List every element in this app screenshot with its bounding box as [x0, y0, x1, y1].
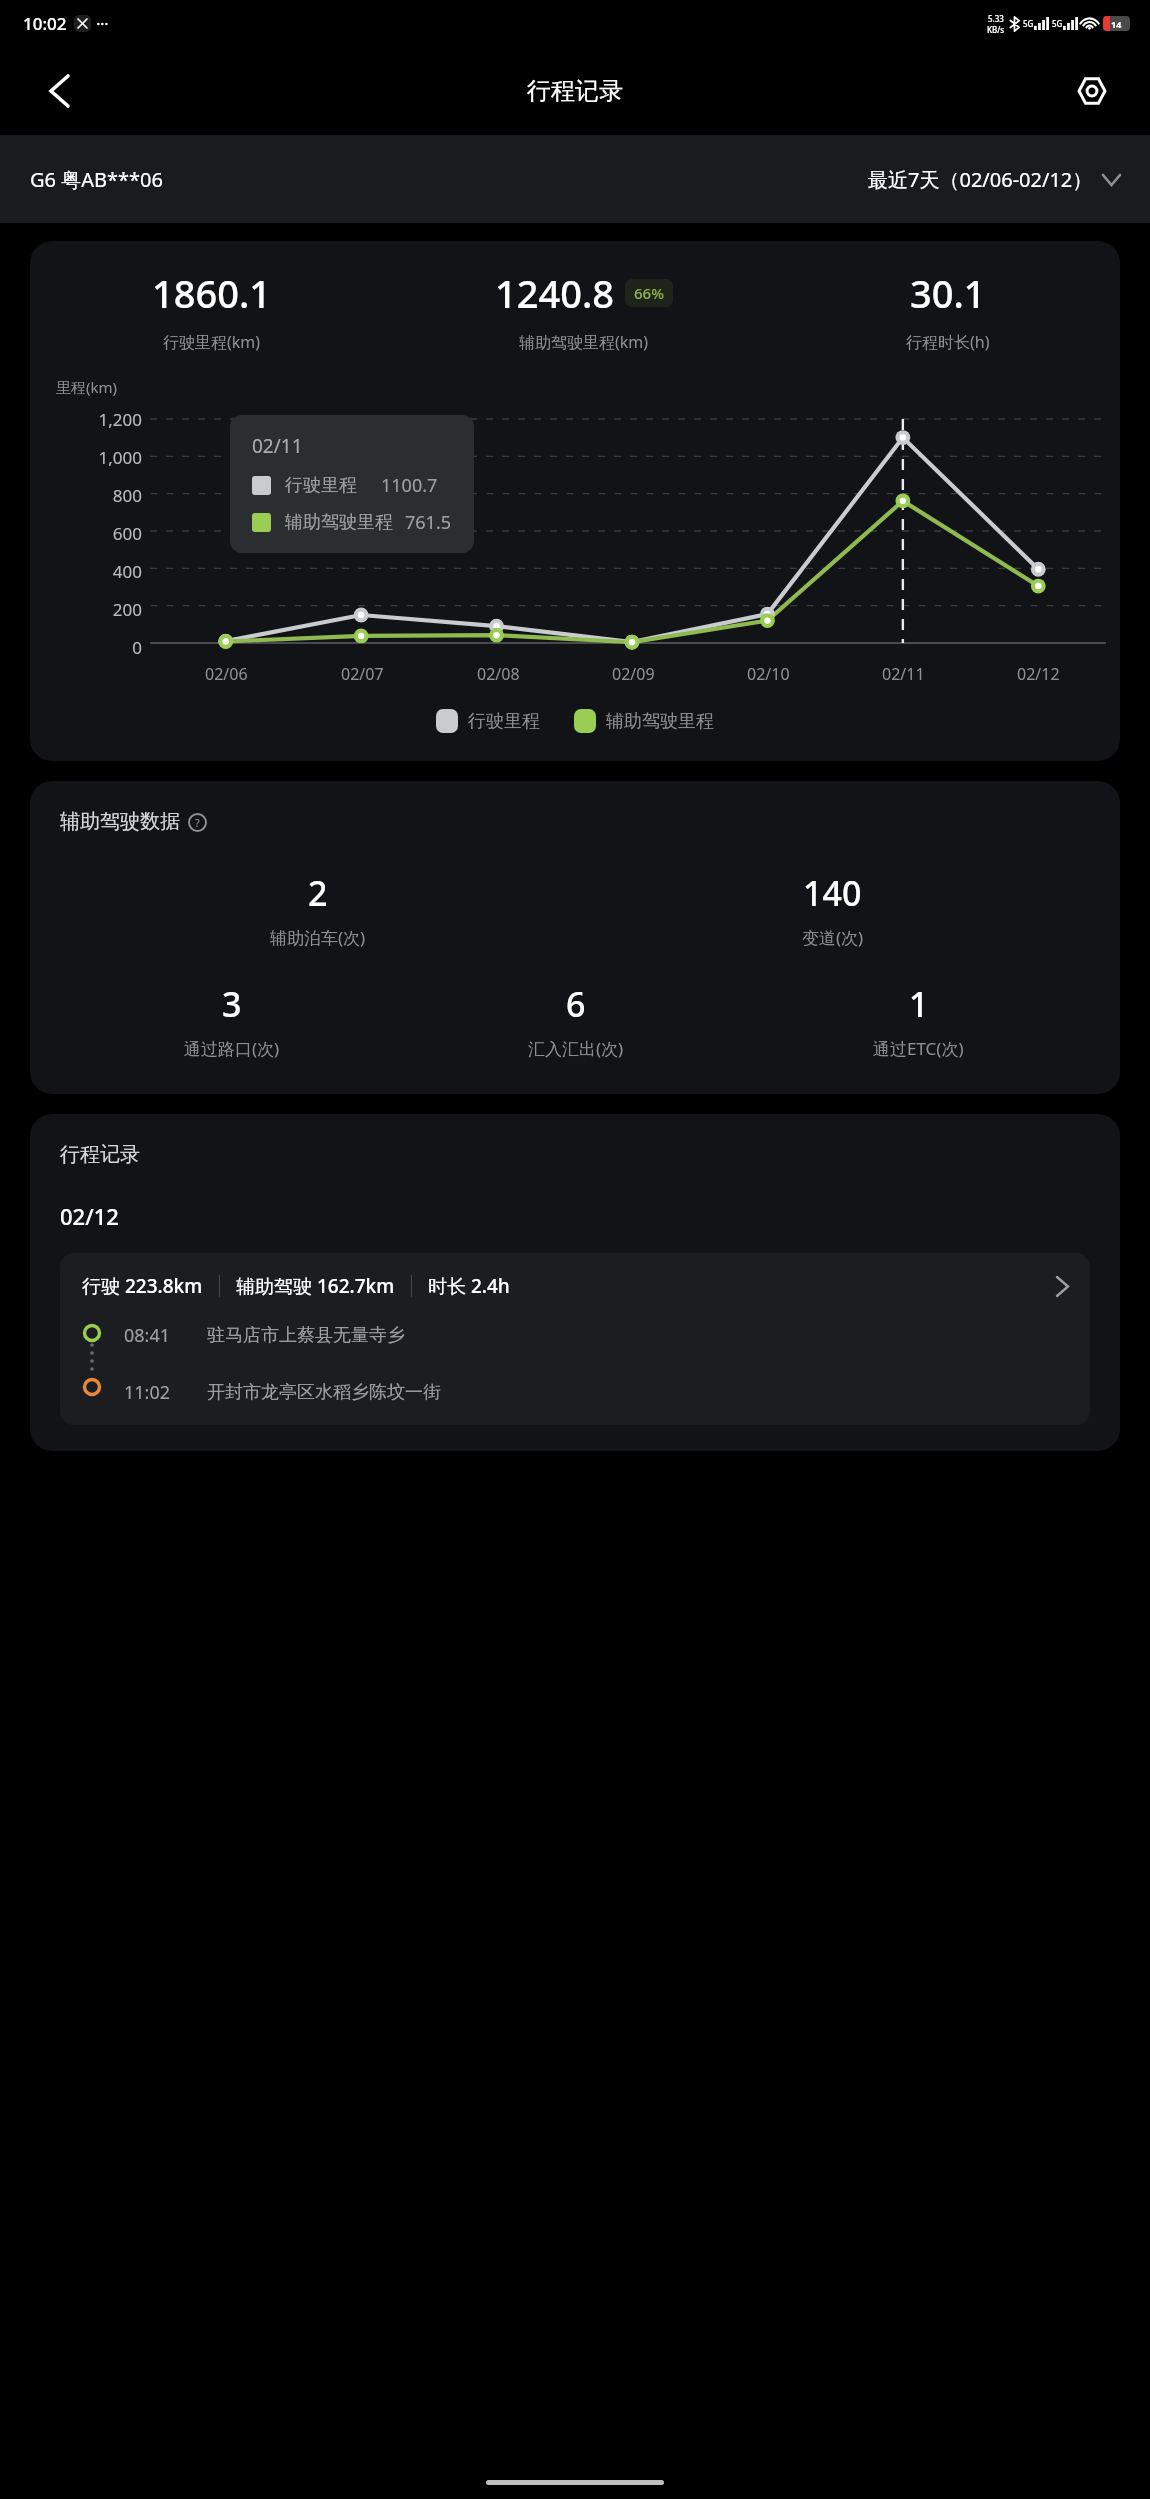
staticText: 行驶里程 — [285, 474, 357, 497]
staticText: 通过ETC(次) — [873, 1037, 964, 1060]
staticText: 行程记录 — [527, 76, 623, 106]
staticText: KB/s — [987, 24, 1005, 35]
staticText: 02/11 — [882, 663, 925, 685]
staticText: 02/12 — [1017, 663, 1060, 685]
staticText: 02/08 — [477, 663, 520, 685]
staticText: 辅助驾驶 162.7km — [236, 1273, 395, 1299]
staticText: 10:02 — [23, 12, 67, 35]
staticText: 11:02 — [124, 1380, 171, 1405]
staticText: 02/11 — [252, 433, 303, 459]
staticText: 辅助驾驶里程 — [285, 511, 393, 534]
staticText: 行程时长(h) — [906, 331, 990, 353]
staticText: 行驶 223.8km — [82, 1273, 203, 1299]
staticText: 辅助驾驶数据 — [60, 809, 180, 834]
staticText: 30.1 — [910, 267, 986, 319]
staticText: 761.5 — [405, 510, 452, 535]
button[interactable]: 行驶 223.8km — [60, 1253, 1090, 1425]
staticText: 行程记录 — [60, 1142, 140, 1167]
staticText: 变道(次) — [802, 926, 864, 949]
staticText: 02/10 — [747, 663, 790, 685]
staticText: 14 — [1111, 18, 1122, 30]
staticText: 1240.8 — [495, 267, 615, 319]
staticText: 1,000 — [30, 446, 142, 469]
staticText: ? — [195, 815, 200, 830]
staticText: 里程(km) — [56, 377, 118, 397]
staticText: G6 粤AB***06 — [30, 166, 163, 193]
staticText: 5.33 — [988, 13, 1004, 24]
staticText: 1860.1 — [152, 267, 272, 319]
staticText: 08:41 — [124, 1323, 171, 1348]
staticText: 辅助泊车(次) — [270, 926, 366, 949]
staticText: 1 — [909, 981, 929, 1027]
staticText: 02/12 — [60, 1201, 119, 1231]
staticText: 辅助驾驶里程 — [606, 710, 714, 733]
staticText: 行驶里程(km) — [163, 331, 261, 353]
staticText: 1100.7 — [381, 473, 438, 498]
button[interactable]: Back — [36, 68, 82, 114]
staticText: 行驶里程 — [468, 710, 540, 733]
staticText: 通过路口(次) — [184, 1037, 280, 1060]
staticText: 02/06 — [205, 663, 248, 685]
staticText: 开封市龙亭区水稻乡陈坟一街 — [207, 1381, 441, 1404]
staticText: 0 — [30, 636, 142, 659]
staticText: 驻马店市上蔡县无量寺乡 — [207, 1324, 405, 1347]
staticText: 5G — [1023, 18, 1034, 29]
staticText: 最近7天（02/06-02/12） — [868, 166, 1093, 193]
staticText: 600 — [30, 522, 142, 545]
button[interactable]: Settings — [1068, 67, 1116, 115]
staticText: 5G — [1052, 18, 1063, 29]
button[interactable]: Help — [186, 811, 208, 833]
staticText: 400 — [30, 560, 142, 583]
staticText: 02/09 — [612, 663, 655, 685]
staticText: 6 — [566, 981, 586, 1027]
staticText: 800 — [30, 484, 142, 507]
staticText: 辅助驾驶里程(km) — [519, 331, 649, 353]
button[interactable]: 最近7天（02/06-02/12） — [868, 158, 1120, 201]
staticText: 66% — [634, 283, 664, 303]
staticText: 汇入汇出(次) — [528, 1037, 624, 1060]
staticText: 时长 2.4h — [428, 1273, 510, 1299]
button[interactable]: G6 粤AB***06 — [30, 158, 163, 201]
staticText: 02/07 — [341, 663, 384, 685]
staticText: 1,200 — [30, 408, 142, 431]
staticText: 200 — [30, 598, 142, 621]
staticText: 2 — [308, 870, 328, 916]
staticText: 3 — [222, 981, 242, 1027]
staticText: 140 — [803, 870, 862, 916]
